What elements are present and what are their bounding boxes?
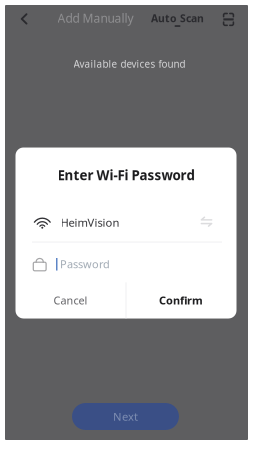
button[interactable]: Scan QR code: [216, 7, 240, 31]
button[interactable]: Auto Scan: [145, 7, 209, 29]
staticText: Confirm: [159, 293, 203, 308]
staticText: Password: [60, 257, 110, 272]
staticText: HeimVision: [60, 215, 119, 230]
button[interactable]: Confirm: [125, 282, 236, 318]
button[interactable]: Back: [11, 6, 37, 32]
staticText: Add Manually: [57, 10, 133, 26]
button[interactable]: Cancel: [15, 282, 125, 318]
button[interactable]: Next: [72, 403, 179, 430]
staticText: Cancel: [53, 293, 87, 308]
staticText: Next: [113, 409, 138, 424]
button[interactable]: Switch network: [197, 213, 215, 231]
staticText: Auto Scan: [151, 11, 204, 25]
button[interactable]: Add Manually: [52, 8, 138, 28]
staticText: Available devices found: [73, 57, 185, 71]
staticText: Enter Wi-Fi Password: [57, 166, 194, 184]
